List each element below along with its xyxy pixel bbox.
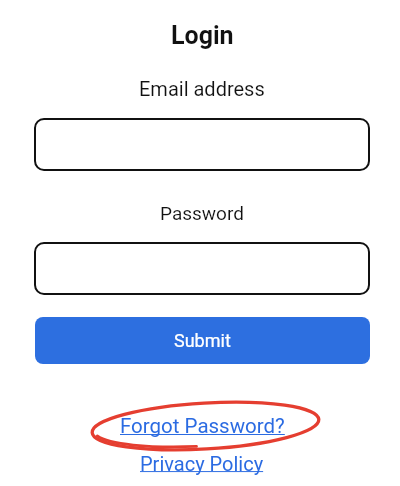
staticText: Password [160, 202, 244, 224]
staticText: Submit [174, 330, 231, 351]
staticText: Email address [139, 77, 265, 100]
staticText: Privacy Policy [140, 452, 264, 475]
staticText: Login [171, 21, 234, 50]
staticText: Forgot Password? [120, 414, 285, 438]
